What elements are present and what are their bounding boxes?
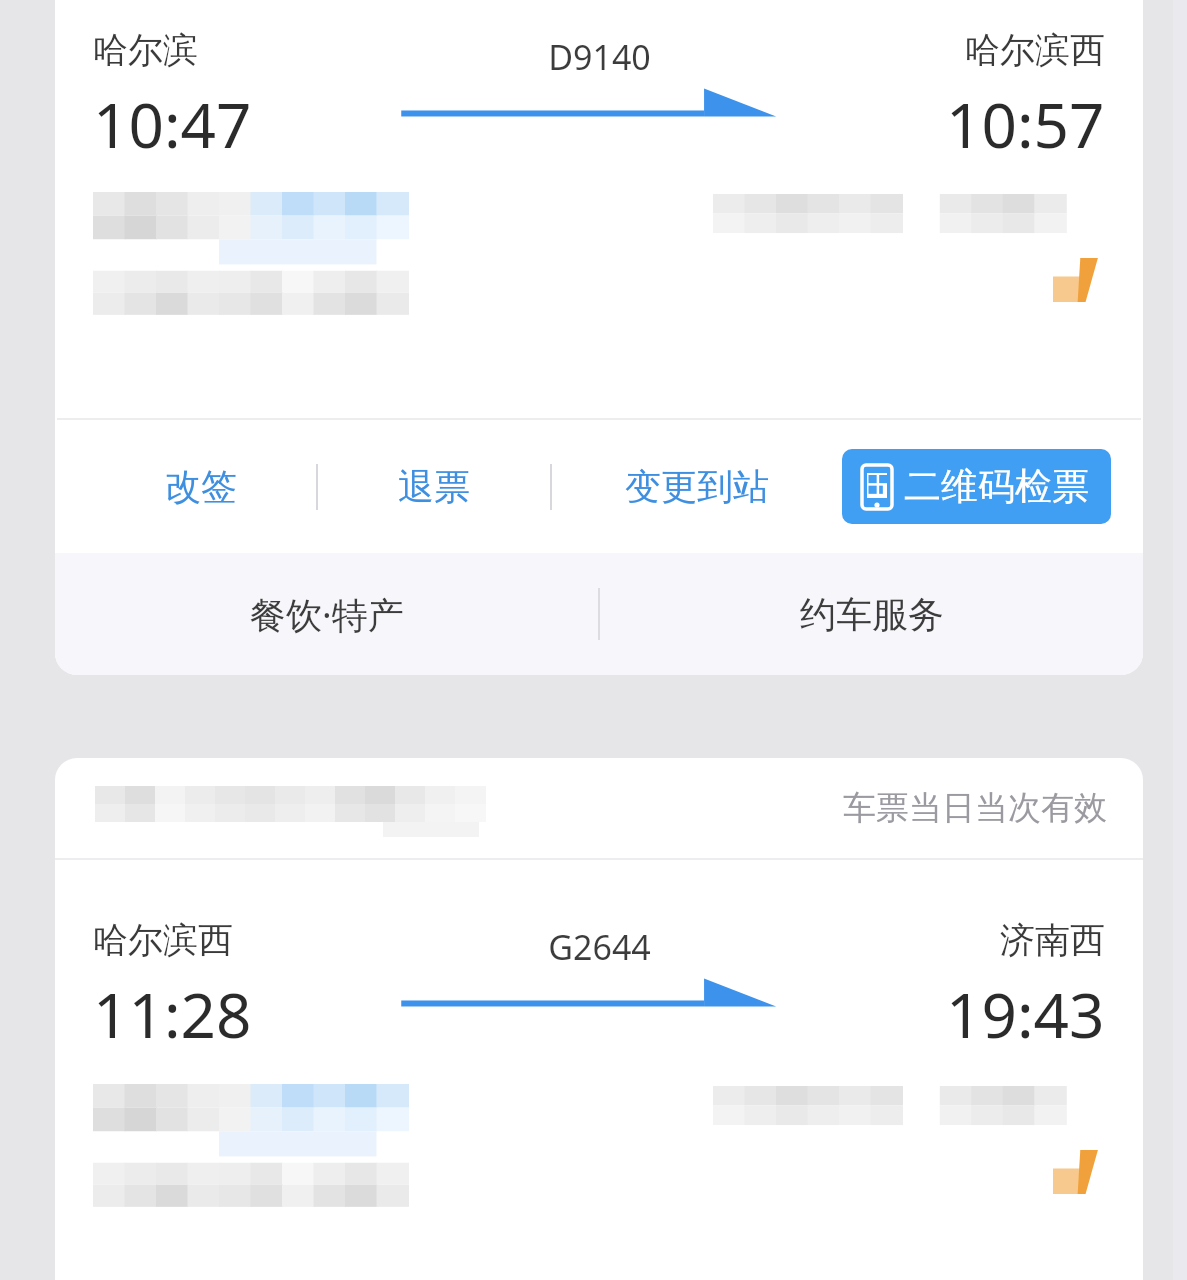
staticText: 10:47 <box>93 82 252 166</box>
staticText: 车票当日当次有效 <box>843 787 1107 829</box>
staticText: G2644 <box>548 924 651 970</box>
staticText: 二维码检票 <box>904 463 1089 510</box>
staticText: 约车服务 <box>800 592 944 637</box>
staticText: 餐饮·特产 <box>250 590 404 639</box>
button[interactable]: 改签 <box>85 450 316 523</box>
staticText: 11:28 <box>93 972 252 1056</box>
staticText: 19:43 <box>946 972 1105 1056</box>
staticText: 改签 <box>165 464 237 509</box>
staticText: 哈尔滨西 <box>965 28 1105 72</box>
staticText: 变更到站 <box>625 464 769 509</box>
staticText: 济南西 <box>1000 918 1105 962</box>
button[interactable]: 变更到站 <box>552 450 842 523</box>
button[interactable]: 二维码检票 <box>842 449 1111 524</box>
staticText: 哈尔滨 <box>93 28 198 72</box>
button[interactable]: 约车服务 <box>600 553 1143 675</box>
staticText: 10:57 <box>946 82 1105 166</box>
button[interactable]: 餐饮·特产 <box>55 553 598 675</box>
staticText: 哈尔滨西 <box>93 918 233 962</box>
button[interactable]: 退票 <box>318 450 550 523</box>
staticText: 退票 <box>398 464 470 509</box>
staticText: D9140 <box>548 34 651 80</box>
